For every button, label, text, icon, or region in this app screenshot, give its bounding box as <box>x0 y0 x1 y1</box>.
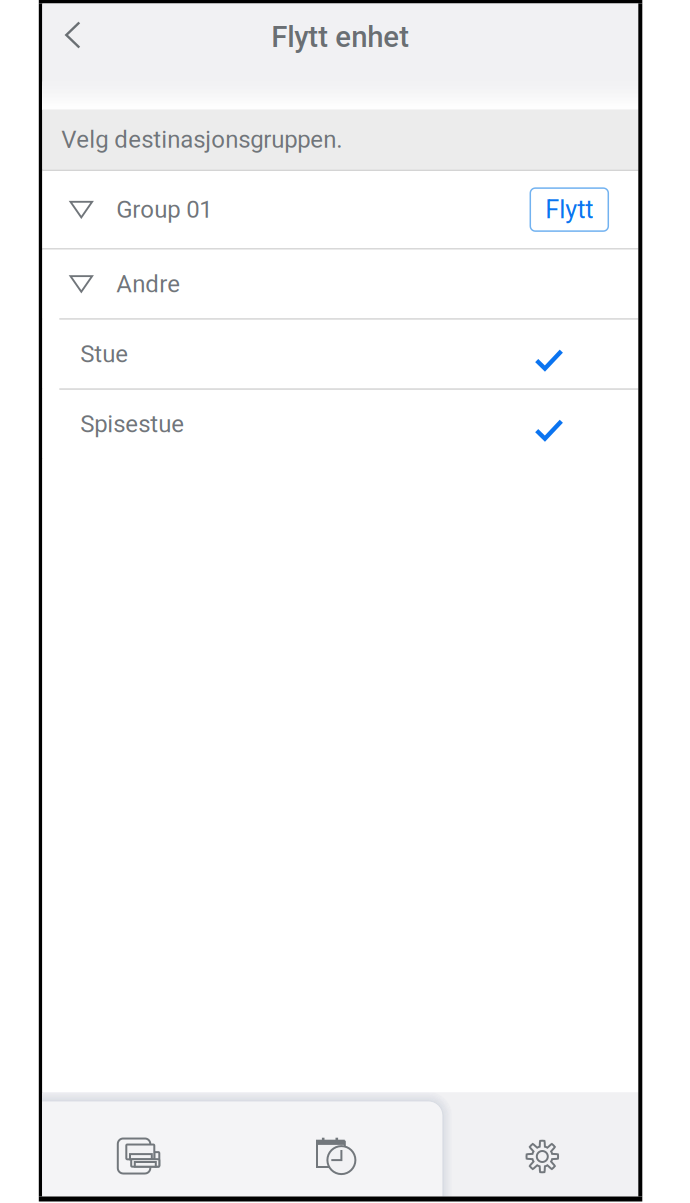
button[interactable]: Jobs <box>236 1092 436 1196</box>
staticText: Flytt <box>545 195 593 224</box>
button[interactable]: Printers <box>40 1092 236 1196</box>
staticText: Flytt enhet <box>271 20 409 54</box>
button[interactable]: Settings <box>444 1092 640 1196</box>
staticText: Spisestue <box>80 410 184 438</box>
button[interactable]: Stue <box>42 320 638 388</box>
button[interactable]: Spisestue <box>42 390 638 458</box>
button[interactable]: Back <box>42 3 103 69</box>
staticText: Andre <box>116 270 180 298</box>
button[interactable]: Group 01 <box>42 171 638 248</box>
staticText: Group 01 <box>116 195 212 224</box>
staticText: Stue <box>80 340 128 368</box>
staticText: Velg destinasjonsgruppen. <box>61 125 342 153</box>
button[interactable]: Andre <box>42 250 638 318</box>
